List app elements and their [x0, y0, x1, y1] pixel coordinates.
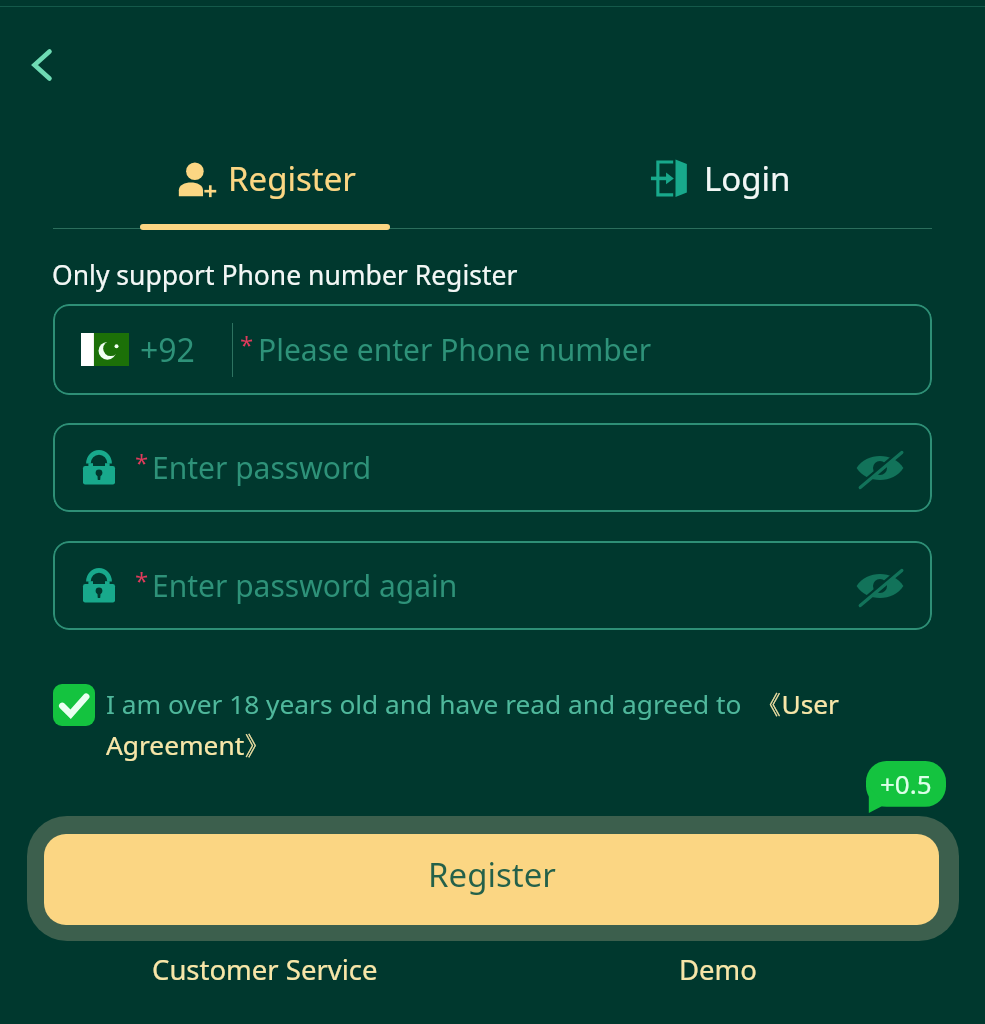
staticText: Register: [428, 852, 556, 897]
button[interactable]: Login: [539, 142, 899, 214]
button[interactable]: Back: [16, 39, 68, 91]
staticText: Enter password again: [152, 565, 458, 606]
staticText: *: [135, 446, 149, 479]
button[interactable]: Register: [85, 142, 445, 214]
button[interactable]: +92: [53, 304, 932, 395]
button[interactable]: Show password: [854, 442, 906, 494]
staticText: Only support Phone number Register: [52, 257, 518, 293]
staticText: +92: [140, 328, 195, 372]
staticText: *: [135, 564, 149, 597]
button[interactable]: Register: [44, 834, 939, 925]
button[interactable]: Customer Service: [152, 951, 378, 988]
button[interactable]: Agree to user agreement: [53, 684, 95, 726]
staticText: Enter password: [152, 447, 372, 488]
staticText: Login: [704, 156, 791, 201]
staticText: *: [240, 328, 254, 361]
button[interactable]: Demo: [679, 951, 757, 988]
button[interactable]: *: [53, 541, 932, 630]
staticText: Please enter Phone number: [258, 329, 652, 370]
button[interactable]: *: [53, 423, 932, 512]
button[interactable]: I am over 18 years old and have read and…: [106, 686, 866, 762]
staticText: +0.5: [880, 766, 932, 801]
staticText: Register: [228, 156, 356, 201]
button[interactable]: Show password: [854, 560, 906, 612]
